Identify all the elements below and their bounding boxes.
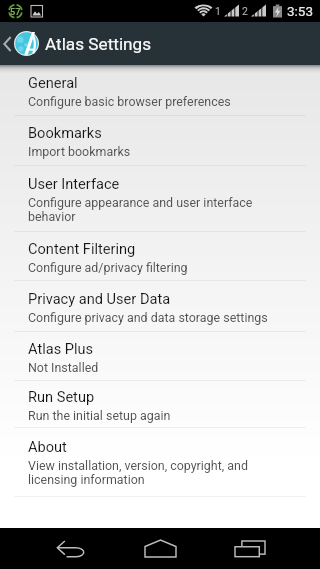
staticText: 3:53 (287, 3, 314, 19)
staticText: About (28, 438, 67, 455)
button[interactable]: Atlas Plus (0, 332, 320, 380)
staticText: Configure appearance and user interface … (28, 195, 278, 225)
staticText: Import bookmarks (28, 144, 131, 159)
staticText: 2 (242, 5, 248, 17)
staticText: Atlas Settings (45, 34, 152, 54)
button[interactable]: Content Filtering (0, 232, 320, 280)
button[interactable]: Run Setup (0, 381, 320, 427)
staticText: Configure ad/privacy filtering (28, 260, 188, 275)
staticText: Run the initial setup again (28, 408, 171, 423)
button[interactable]: Recent apps (220, 528, 280, 569)
button[interactable]: Navigate up (0, 22, 320, 65)
button[interactable]: Home (130, 528, 190, 569)
button[interactable]: Privacy and User Data (0, 281, 320, 331)
button[interactable]: Back (41, 528, 101, 569)
button[interactable]: User Interface (0, 166, 320, 231)
staticText: Bookmarks (28, 124, 102, 141)
staticText: General (28, 74, 78, 91)
button[interactable]: General (0, 65, 320, 115)
staticText: Atlas Plus (28, 340, 94, 357)
staticText: 1 (215, 5, 221, 17)
button[interactable]: Bookmarks (0, 116, 320, 165)
staticText: Privacy and User Data (28, 290, 171, 307)
staticText: Not Installed (28, 360, 99, 375)
staticText: 57 (10, 6, 21, 17)
staticText: Run Setup (28, 388, 95, 405)
staticText: User Interface (28, 175, 120, 192)
staticText: Configure privacy and data storage setti… (28, 310, 268, 325)
staticText: View installation, version, copyright, a… (28, 458, 278, 488)
button[interactable]: About (0, 428, 320, 496)
staticText: Configure basic browser preferences (28, 94, 231, 109)
staticText: Content Filtering (28, 240, 136, 257)
